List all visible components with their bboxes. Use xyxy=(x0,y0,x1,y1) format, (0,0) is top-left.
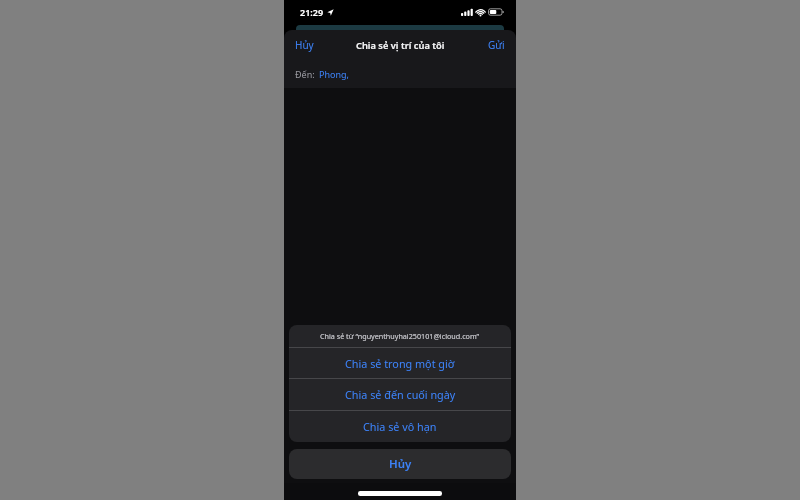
button[interactable]: Chia sẻ vô hạn xyxy=(289,411,511,442)
staticText: Hủy xyxy=(389,456,412,472)
button[interactable]: Gửi xyxy=(488,38,505,52)
staticText: Chia sẻ trong một giờ xyxy=(345,356,455,371)
staticText: Chia sẻ vị trí của tôi xyxy=(356,39,445,52)
button[interactable]: Hủy xyxy=(295,38,314,52)
staticText: Chia sẻ từ “nguyenthuyhai250101@icloud.c… xyxy=(320,331,480,341)
button[interactable]: Hủy xyxy=(289,449,511,479)
staticText: Chia sẻ đến cuối ngày xyxy=(345,387,456,402)
staticText: Chia sẻ vô hạn xyxy=(363,419,437,434)
button[interactable]: Chia sẻ đến cuối ngày xyxy=(289,379,511,410)
button[interactable]: Phong, xyxy=(319,68,349,80)
button[interactable]: Chia sẻ trong một giờ xyxy=(289,348,511,378)
staticText: 21:29 xyxy=(300,6,324,18)
staticText: Đến: xyxy=(295,68,315,80)
